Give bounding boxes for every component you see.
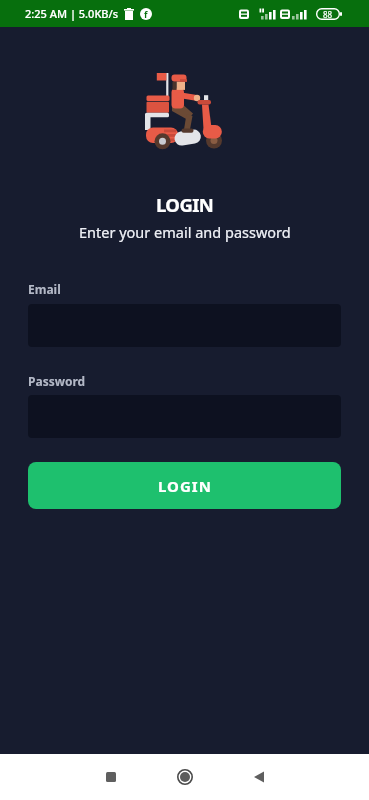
staticText: 88 [323,9,333,20]
staticText: LOGIN [156,192,214,217]
staticText: Email [28,281,61,297]
button[interactable]: LOGIN [28,462,341,509]
staticText: LOGIN [158,476,212,496]
staticText: f [144,8,148,20]
staticText: 2:25 AM | 5.0KB/s [25,6,119,21]
button[interactable] [235,754,283,800]
button[interactable] [161,754,209,800]
staticText: Enter your email and password [79,222,291,242]
button[interactable] [87,754,135,800]
staticText: Password [28,373,86,389]
